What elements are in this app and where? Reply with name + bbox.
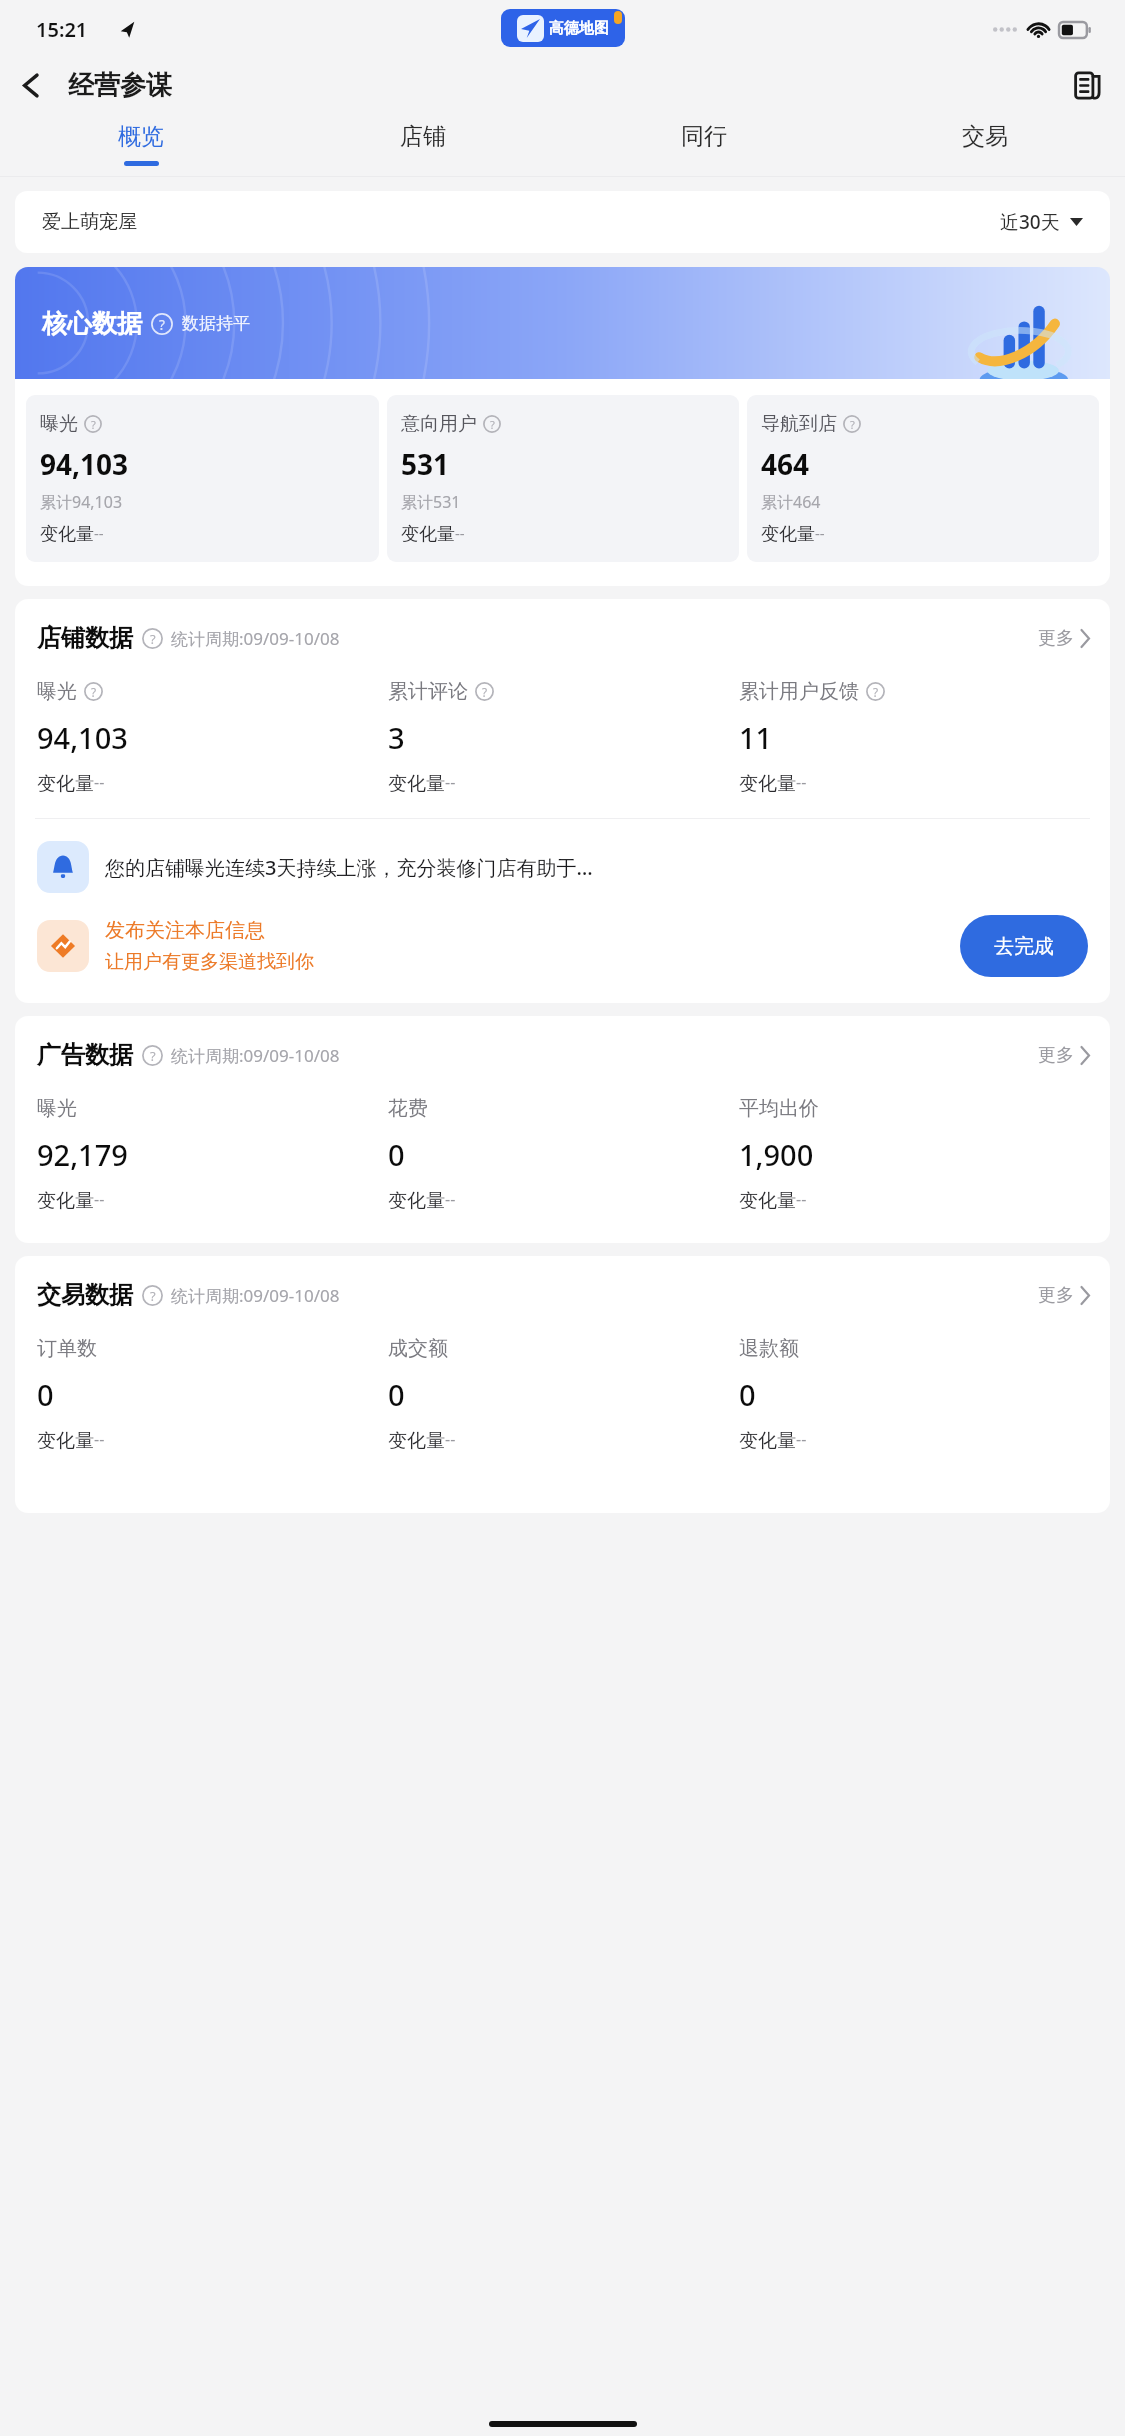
staticText: 经营参谋 (68, 69, 172, 102)
staticText: 意向用户 (401, 412, 477, 436)
staticText: 变化量 (37, 772, 94, 796)
staticText: 464 (761, 445, 810, 483)
staticText: 变化量 (388, 1189, 445, 1213)
staticText: 变化量 (761, 523, 815, 546)
staticText: 统计周期:09/09-10/08 (171, 627, 340, 650)
button[interactable]: 店铺 (282, 112, 563, 176)
staticText: ? (850, 417, 855, 432)
staticText: 累计94,103 (40, 491, 123, 513)
staticText: ? (150, 630, 156, 648)
staticText: 变化量 (40, 523, 94, 546)
staticText: 累计用户反馈 (739, 679, 859, 704)
staticText: 统计周期:09/09-10/08 (171, 1284, 340, 1307)
staticText: 0 (37, 1375, 54, 1414)
staticText: ? (482, 684, 488, 700)
button[interactable]: 概览 (0, 112, 282, 176)
staticText: 去完成 (994, 934, 1054, 959)
staticText: 交易 (962, 122, 1008, 151)
staticText: 成交额 (388, 1336, 448, 1361)
staticText: 导航到店 (761, 412, 837, 436)
staticText: 广告数据 (37, 1040, 133, 1070)
staticText: -- (455, 523, 465, 543)
staticText: 0 (739, 1375, 756, 1414)
button[interactable]: 曝光 (26, 395, 379, 562)
staticText: 变化量 (739, 772, 796, 796)
staticText: 11 (739, 718, 773, 757)
staticText: 近30天 (1000, 209, 1060, 235)
button[interactable]: Report (1063, 61, 1111, 109)
button[interactable]: 导航到店 (747, 395, 1099, 562)
staticText: 94,103 (37, 718, 128, 757)
staticText: 交易数据 (37, 1280, 133, 1310)
staticText: -- (796, 1188, 807, 1210)
staticText: -- (445, 1428, 456, 1450)
staticText: 15:21 (36, 16, 88, 43)
staticText: 变化量 (388, 1429, 445, 1453)
staticText: ? (873, 684, 879, 700)
staticText: 曝光 (37, 1096, 77, 1121)
staticText: -- (815, 523, 825, 543)
staticText: 统计周期:09/09-10/08 (171, 1044, 340, 1067)
staticText: -- (94, 523, 104, 543)
button[interactable]: Back (6, 60, 56, 110)
staticText: 核心数据 (42, 308, 142, 339)
button[interactable]: 您的店铺曝光连续3天持续上涨，充分装修门店有助于… (15, 819, 1110, 909)
staticText: 变化量 (37, 1429, 94, 1453)
staticText: 更多 (1038, 1044, 1074, 1067)
button[interactable]: 意向用户 (387, 395, 739, 562)
staticText: 变化量 (388, 772, 445, 796)
staticText: ? (150, 1047, 156, 1065)
staticText: 累计464 (761, 491, 821, 513)
staticText: 变化量 (739, 1429, 796, 1453)
staticText: 92,179 (37, 1135, 128, 1174)
staticText: -- (796, 1428, 807, 1450)
staticText: 变化量 (739, 1189, 796, 1213)
staticText: 让用户有更多渠道找到你 (105, 950, 314, 974)
button[interactable]: 交易数据 (37, 1280, 1090, 1310)
staticText: ? (91, 684, 97, 700)
staticText: ? (159, 315, 165, 334)
staticText: -- (94, 1188, 105, 1210)
staticText: ? (91, 417, 96, 432)
staticText: -- (796, 771, 807, 793)
staticText: 1,900 (739, 1135, 814, 1174)
staticText: 退款额 (739, 1336, 799, 1361)
staticText: 花费 (388, 1096, 428, 1121)
staticText: 更多 (1038, 1284, 1074, 1307)
staticText: 店铺数据 (37, 623, 133, 653)
staticText: 3 (388, 718, 405, 757)
staticText: 平均出价 (739, 1096, 819, 1121)
staticText: 0 (388, 1375, 405, 1414)
button[interactable]: 交易 (844, 112, 1125, 176)
staticText: 94,103 (40, 445, 129, 483)
staticText: ? (490, 417, 495, 432)
staticText: 店铺 (400, 122, 446, 151)
staticText: 爱上萌宠屋 (42, 210, 137, 234)
staticText: 531 (401, 445, 450, 483)
staticText: 变化量 (401, 523, 455, 546)
staticText: -- (445, 1188, 456, 1210)
button[interactable]: 店铺数据 (37, 623, 1090, 653)
staticText: 曝光 (40, 412, 78, 436)
button[interactable]: 广告数据 (37, 1040, 1090, 1070)
staticText: 更多 (1038, 627, 1074, 650)
button[interactable]: 同行 (563, 112, 844, 176)
staticText: ? (150, 1287, 156, 1305)
staticText: 高德地图 (549, 19, 609, 38)
staticText: 累计评论 (388, 679, 468, 704)
button[interactable]: 爱上萌宠屋 (15, 191, 1110, 253)
staticText: 概览 (118, 122, 164, 151)
staticText: 订单数 (37, 1336, 97, 1361)
staticText: 发布关注本店信息 (105, 918, 265, 943)
staticText: -- (94, 771, 105, 793)
button[interactable]: 去完成 (960, 915, 1088, 977)
staticText: -- (445, 771, 456, 793)
button[interactable]: 发布关注本店信息 (15, 909, 1110, 1003)
staticText: 曝光 (37, 679, 77, 704)
staticText: 您的店铺曝光连续3天持续上涨，充分装修门店有助于… (105, 854, 1088, 881)
staticText: 同行 (681, 122, 727, 151)
staticText: 0 (388, 1135, 405, 1174)
staticText: 数据持平 (182, 313, 250, 334)
staticText: 变化量 (37, 1189, 94, 1213)
staticText: 累计531 (401, 491, 461, 513)
